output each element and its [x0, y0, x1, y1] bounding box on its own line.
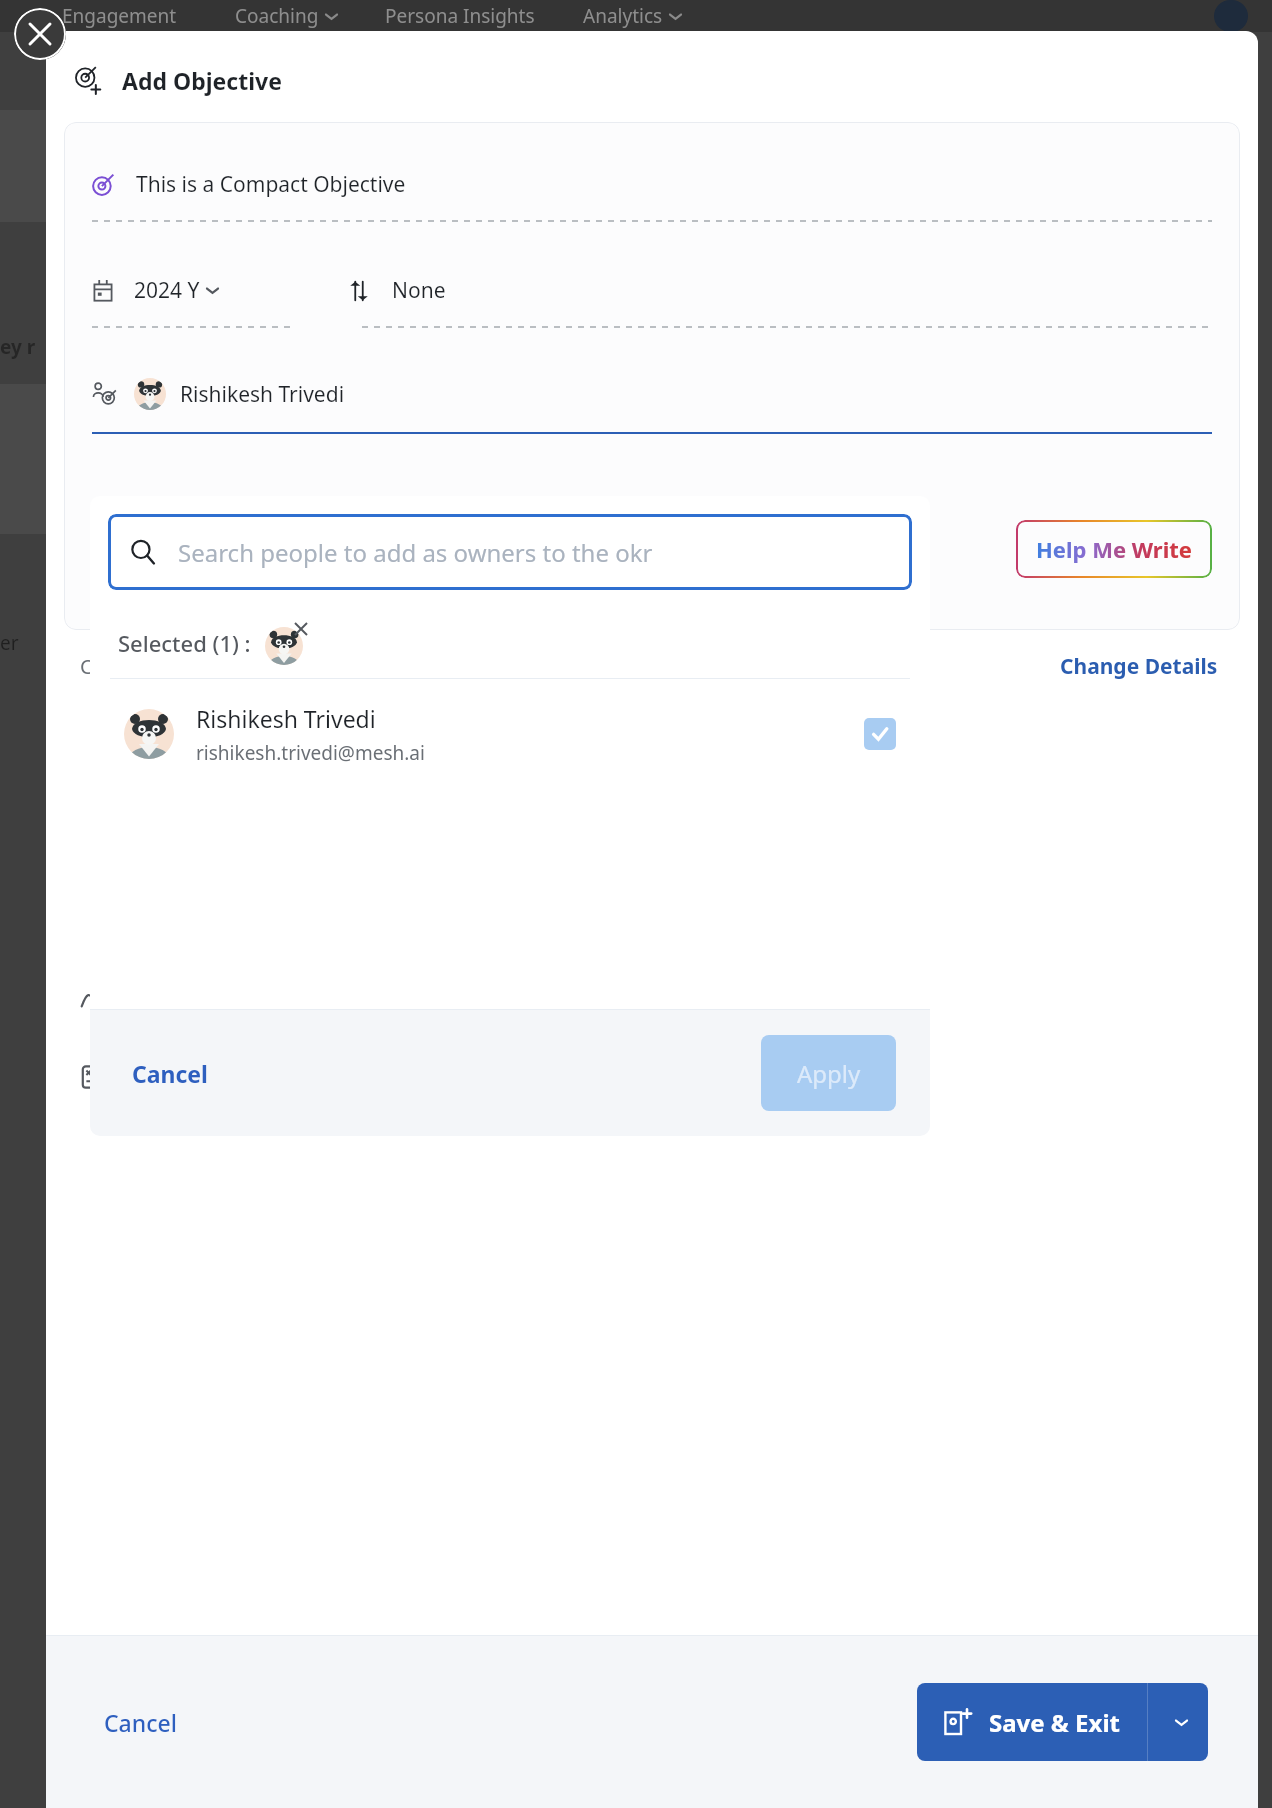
button[interactable]: Rishikesh Trivedi: [90, 679, 930, 789]
staticText: C: [80, 653, 93, 680]
button[interactable]: More save options: [1148, 1683, 1208, 1761]
button[interactable]: Close: [14, 8, 66, 60]
button[interactable]: 2024 Y: [92, 276, 348, 305]
staticText: Apply: [797, 1057, 861, 1090]
button[interactable]: Remove owner: [293, 621, 309, 637]
staticText: Coaching: [235, 3, 319, 29]
staticText: Add Objective: [122, 65, 282, 96]
staticText: Help Me Write: [1036, 534, 1192, 564]
staticText: Rishikesh Trivedi: [180, 380, 345, 409]
button[interactable]: Help Me Write: [1016, 520, 1212, 578]
staticText: None: [392, 276, 446, 305]
staticText: Engagement: [62, 3, 177, 29]
staticText: 2024 Y: [134, 276, 200, 305]
button[interactable]: None: [348, 276, 1212, 305]
staticText: ey r: [0, 334, 36, 360]
button[interactable]: Apply: [761, 1035, 896, 1111]
button[interactable]: Rishikesh Trivedi: [92, 378, 345, 410]
staticText: Analytics: [583, 3, 663, 29]
button[interactable]: This is a Compact Objective: [92, 170, 406, 199]
staticText: Cancel: [132, 1058, 208, 1089]
button[interactable]: Change Details: [1054, 646, 1224, 687]
staticText: Cancel: [104, 1707, 177, 1738]
staticText: This is a Compact Objective: [136, 170, 406, 199]
staticText: Search people to add as owners to the ok…: [178, 536, 653, 569]
staticText: Save & Exit: [989, 1706, 1121, 1739]
staticText: Persona Insights: [385, 3, 535, 29]
button[interactable]: Cancel: [124, 1050, 216, 1097]
staticText: Change Details: [1060, 652, 1218, 681]
staticText: Dependent: [130, 987, 241, 1016]
staticText: Rishikesh Trivedi: [196, 703, 376, 734]
button[interactable]: Selected: [864, 718, 896, 750]
staticText: Selected (1) :: [118, 628, 251, 658]
staticText: Average: [130, 1062, 211, 1091]
button[interactable]: Cancel: [96, 1699, 185, 1746]
button[interactable]: Search people to add as owners to the ok…: [108, 514, 912, 590]
button[interactable]: Average: [46, 1062, 1258, 1091]
staticText: rishikesh.trivedi@mesh.ai: [196, 740, 425, 766]
staticText: er: [0, 630, 19, 656]
button[interactable]: Dependent: [46, 987, 1258, 1016]
button[interactable]: Save & Exit: [917, 1683, 1147, 1761]
